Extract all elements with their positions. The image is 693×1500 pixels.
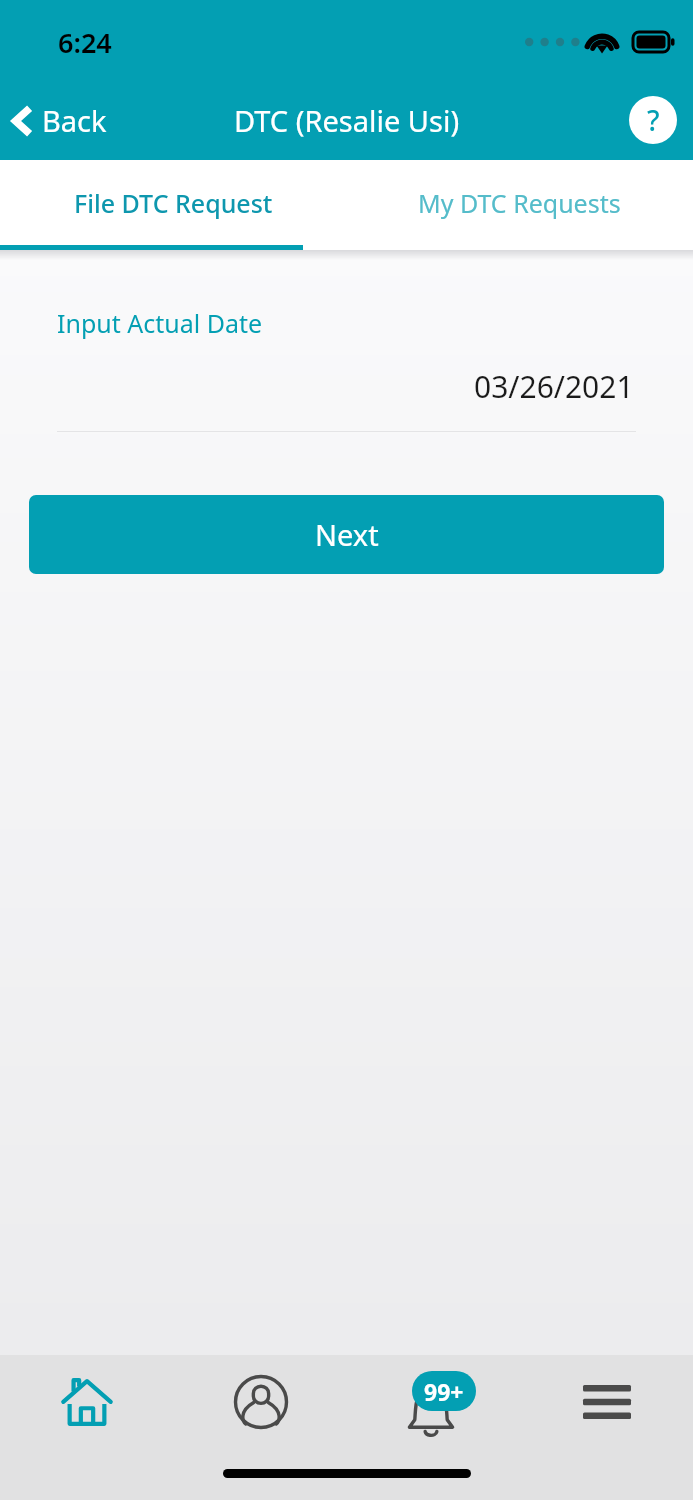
button[interactable]: My DTC Requests [346, 160, 693, 245]
staticText: 03/26/2021 [474, 366, 634, 407]
staticText: Next [315, 515, 379, 554]
staticText: Back [42, 101, 107, 140]
button[interactable]: Help [629, 96, 677, 144]
staticText: Input Actual Date [57, 306, 263, 340]
staticText: My DTC Requests [418, 186, 621, 220]
button[interactable]: 03/26/2021 [57, 366, 636, 409]
staticText: DTC (Resalie Usi) [234, 101, 460, 140]
button[interactable]: File DTC Request [0, 160, 346, 245]
staticText: File DTC Request [74, 186, 273, 220]
staticText: ? [647, 101, 660, 139]
button[interactable]: Next [29, 495, 664, 574]
button[interactable]: Notifications [347, 1355, 520, 1455]
staticText: 6:24 [58, 24, 112, 61]
button[interactable]: Profile [174, 1355, 347, 1455]
button[interactable]: Back [0, 91, 121, 150]
button[interactable]: Home [0, 1355, 174, 1455]
staticText: 99+ [424, 1376, 464, 1407]
button[interactable]: Menu [520, 1355, 693, 1455]
